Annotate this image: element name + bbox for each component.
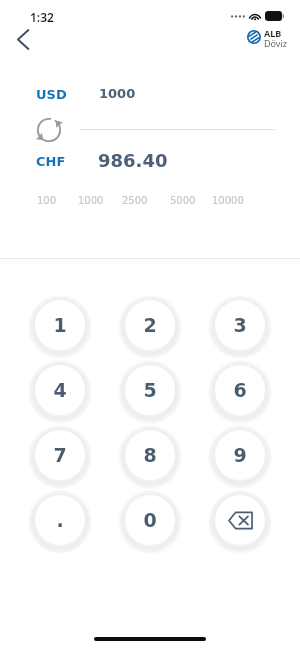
button[interactable]: Swap currencies [34,115,64,145]
staticText: 9 [233,444,247,466]
button[interactable]: 0 [125,495,175,545]
staticText: 1000 [78,195,104,207]
staticText: 5 [143,379,157,401]
button[interactable]: ALB Doviz [247,29,287,53]
staticText: 4 [53,379,67,401]
button[interactable]: CHF [36,154,66,169]
staticText: 2500 [122,195,148,207]
button[interactable]: 7 [35,430,85,480]
button[interactable]: 5000 [170,195,196,207]
button[interactable]: 8 [125,430,175,480]
button[interactable]: 9 [215,430,265,480]
button[interactable]: 1 [35,300,85,350]
staticText: Döviz [264,37,287,49]
staticText: 0 [143,509,157,531]
staticText: ALB [264,27,282,39]
button[interactable]: 4 [35,365,85,415]
button[interactable]: USD [36,87,67,102]
button[interactable]: 6 [215,365,265,415]
staticText: 1:32 [30,9,54,25]
button[interactable]: 2 [125,300,175,350]
button[interactable]: 5 [125,365,175,415]
staticText: 7 [53,444,67,466]
staticText: 100 [37,195,57,207]
button[interactable]: 2500 [122,195,148,207]
staticText: 10000 [212,195,244,207]
staticText: 1 [53,314,67,336]
button[interactable]: Decimal point [35,495,85,545]
button[interactable]: 1000 [78,195,104,207]
staticText: . [56,509,64,531]
staticText: 986.40 [98,150,168,171]
button[interactable]: 3 [215,300,265,350]
staticText: 3 [233,314,247,336]
staticText: 2 [143,314,157,336]
button[interactable]: Back [6,22,40,56]
staticText: 6 [233,379,247,401]
staticText: 8 [143,444,157,466]
button[interactable]: 10000 [212,195,244,207]
button[interactable]: 100 [37,195,57,207]
staticText: 1000 [99,86,136,101]
button[interactable]: Backspace [215,495,265,545]
staticText: 5000 [170,195,196,207]
